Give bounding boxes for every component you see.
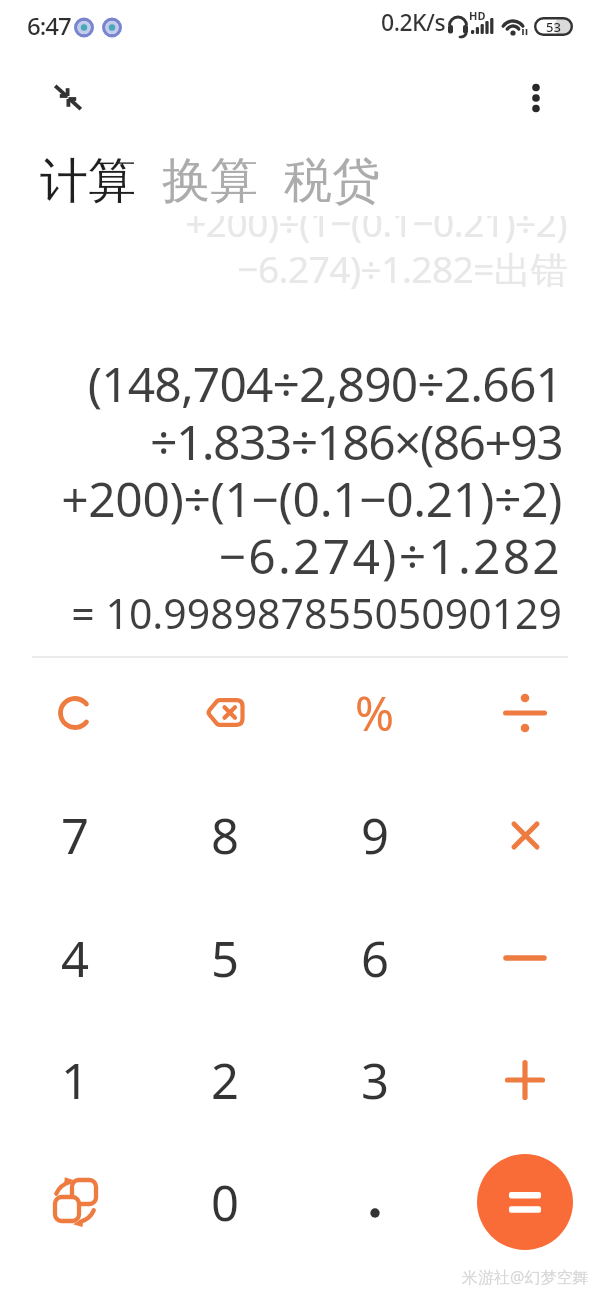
staticText: % [355, 681, 395, 745]
button[interactable]: 换算 [162, 151, 258, 211]
staticText: 0.2K/s [381, 6, 446, 37]
staticText: = 10.99898785505090129 [0, 585, 562, 641]
button[interactable]: 7 [0, 774, 150, 897]
button[interactable]: 1 [0, 1019, 150, 1141]
button[interactable]: 6 [300, 897, 450, 1019]
staticText: 6 [361, 925, 390, 992]
staticText: 9 [361, 802, 390, 869]
button[interactable] [150, 651, 300, 774]
staticText: 53 [546, 18, 561, 36]
button[interactable] [477, 1154, 573, 1250]
staticText: ÷1.833÷186×(86+93 [0, 409, 562, 474]
button[interactable] [44, 74, 92, 120]
button[interactable] [300, 1141, 450, 1263]
staticText: −6.274)÷1.282 [0, 523, 562, 588]
staticText: HD [469, 8, 486, 23]
staticText: +200)÷(1−(0.1−0.21)÷2) [0, 216, 567, 247]
button[interactable] [0, 1141, 150, 1263]
button[interactable] [516, 76, 556, 120]
button[interactable]: 4 [0, 897, 150, 1019]
button[interactable] [450, 1141, 600, 1263]
button[interactable] [450, 651, 600, 774]
staticText: 3 [361, 1047, 390, 1114]
staticText: 2 [211, 1047, 240, 1114]
staticText: 6:47 [27, 9, 71, 42]
staticText: 5 [211, 925, 240, 992]
button[interactable] [450, 897, 600, 1019]
staticText: −6.274)÷1.282=出错 [0, 243, 567, 290]
staticText: +200)÷(1−(0.1−0.21)÷2) [0, 466, 562, 531]
staticText: 米游社@幻梦空舞 [462, 1266, 589, 1288]
staticText: 4 [61, 925, 90, 992]
staticText: 8 [211, 802, 240, 869]
button[interactable] [450, 1019, 600, 1141]
button[interactable]: 税贷 [284, 151, 380, 211]
button[interactable]: 0 [150, 1141, 300, 1263]
button[interactable] [0, 651, 150, 774]
button[interactable]: % [300, 651, 450, 774]
staticText: 7 [61, 802, 90, 869]
staticText: 1 [61, 1047, 90, 1114]
staticText: 0 [211, 1169, 240, 1236]
staticText: (148,704÷2,890÷2.661 [0, 351, 562, 416]
button[interactable]: 5 [150, 897, 300, 1019]
button[interactable]: 9 [300, 774, 450, 897]
button[interactable]: 8 [150, 774, 300, 897]
button[interactable]: 2 [150, 1019, 300, 1141]
button[interactable]: 计算 [40, 151, 136, 211]
button[interactable]: 3 [300, 1019, 450, 1141]
button[interactable] [450, 774, 600, 897]
